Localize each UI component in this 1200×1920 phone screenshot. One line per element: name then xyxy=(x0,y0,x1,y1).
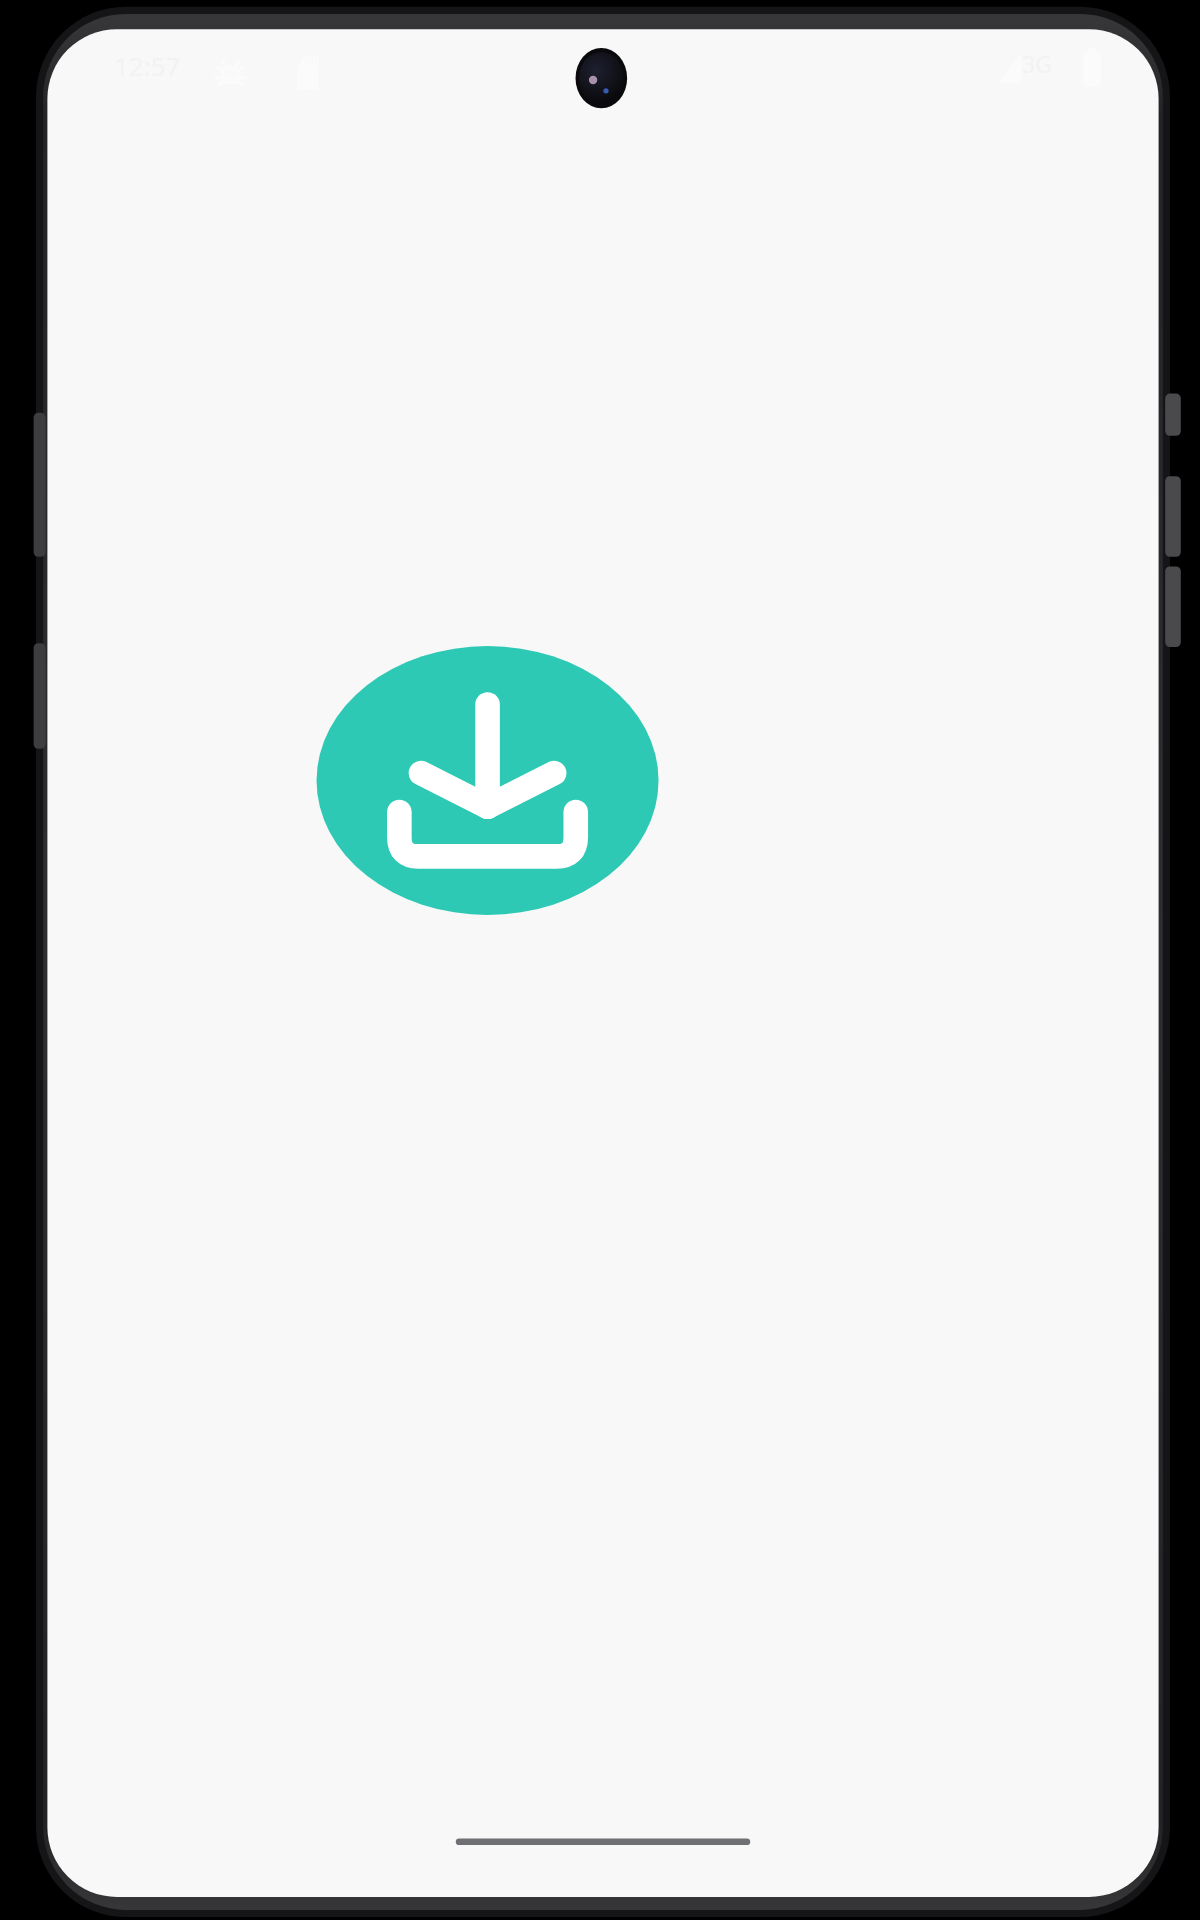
button[interactable]: Download xyxy=(0,0,1200,1920)
